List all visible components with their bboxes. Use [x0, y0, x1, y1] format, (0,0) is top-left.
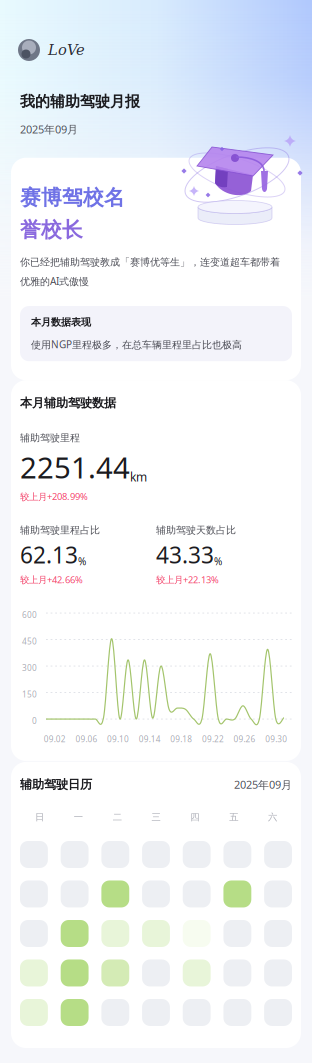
staticText: 辅助驾驶里程占比: [20, 524, 100, 536]
staticText: %: [214, 555, 222, 568]
staticText: 09.06: [75, 733, 97, 745]
staticText: 0: [32, 715, 37, 726]
staticText: 600: [22, 609, 37, 620]
staticText: 2251.44: [20, 447, 130, 487]
staticText: 六: [268, 811, 277, 823]
staticText: 辅助驾驶里程: [20, 431, 80, 444]
staticText: 09.22: [202, 733, 224, 745]
staticText: 09.30: [265, 733, 287, 745]
staticText: 使用NGP里程极多，在总车辆里程里占比也极高: [31, 338, 242, 351]
staticText: 62.13: [20, 539, 78, 570]
staticText: 2025年09月: [234, 777, 292, 792]
staticText: 09.02: [44, 733, 66, 745]
staticText: 赛博驾校名: [20, 185, 125, 211]
staticText: 450: [22, 636, 37, 647]
staticText: 誉校长: [20, 217, 83, 243]
staticText: %: [78, 555, 86, 568]
staticText: 09.26: [234, 733, 256, 745]
staticText: 日: [35, 811, 44, 823]
staticText: 09.14: [139, 733, 161, 745]
button[interactable]: LoVe: [0, 38, 312, 62]
staticText: 43.33: [156, 539, 214, 570]
staticText: 300: [22, 662, 37, 673]
staticText: 辅助驾驶日历: [20, 777, 92, 792]
staticText: 二: [113, 811, 122, 823]
staticText: 09.18: [170, 733, 192, 745]
staticText: 四: [190, 811, 199, 823]
staticText: LoVe: [48, 41, 85, 59]
staticText: 150: [22, 689, 37, 700]
staticText: 本月数据表现: [31, 316, 91, 329]
staticText: 你已经把辅助驾驶教成「赛博优等生」，连变道超车都带着: [20, 256, 280, 268]
staticText: 一: [74, 811, 83, 823]
staticText: km: [130, 469, 147, 485]
staticText: 09.10: [107, 733, 129, 745]
staticText: 优雅的AI式傲慢: [20, 274, 89, 288]
staticText: 较上月+208.99%: [20, 490, 88, 503]
staticText: 本月辅助驾驶数据: [20, 395, 116, 410]
staticText: 较上月+22.13%: [156, 573, 219, 586]
staticText: 较上月+42.66%: [20, 573, 83, 586]
staticText: 五: [229, 811, 238, 823]
staticText: 三: [151, 811, 160, 823]
staticText: 我的辅助驾驶月报: [20, 92, 140, 111]
staticText: 2025年09月: [20, 122, 78, 137]
staticText: 辅助驾驶天数占比: [156, 524, 236, 536]
